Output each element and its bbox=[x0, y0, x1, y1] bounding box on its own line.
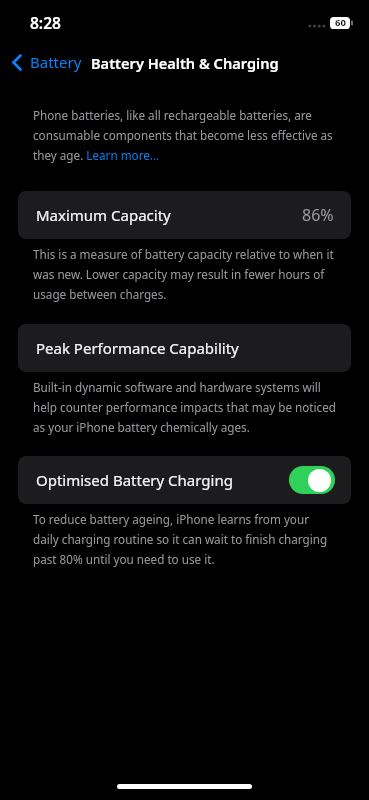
staticText: Maximum Capacity bbox=[36, 205, 171, 225]
staticText: 86% bbox=[302, 204, 334, 226]
staticText: Phone batteries, like all rechargeable b… bbox=[33, 107, 337, 163]
button[interactable]: Battery bbox=[12, 42, 82, 82]
staticText: Peak Performance Capability bbox=[36, 338, 239, 358]
staticText: Built-in dynamic software and hardware s… bbox=[33, 379, 337, 435]
staticText: Optimised Battery Charging bbox=[36, 470, 233, 490]
staticText: This is a measure of battery capacity re… bbox=[33, 246, 337, 302]
button[interactable]: Optimised Battery Charging bbox=[18, 456, 351, 504]
button[interactable]: Maximum Capacity bbox=[18, 191, 351, 239]
button[interactable]: Peak Performance Capability bbox=[18, 324, 351, 372]
button[interactable]: Optimised Battery Charging toggle bbox=[289, 466, 335, 494]
staticText: 8:28 bbox=[30, 12, 61, 33]
staticText: 60 bbox=[335, 16, 346, 29]
staticText: To reduce battery ageing, iPhone learns … bbox=[33, 511, 337, 567]
staticText: Battery Health & Charging bbox=[91, 53, 279, 73]
staticText: Battery bbox=[30, 52, 82, 72]
